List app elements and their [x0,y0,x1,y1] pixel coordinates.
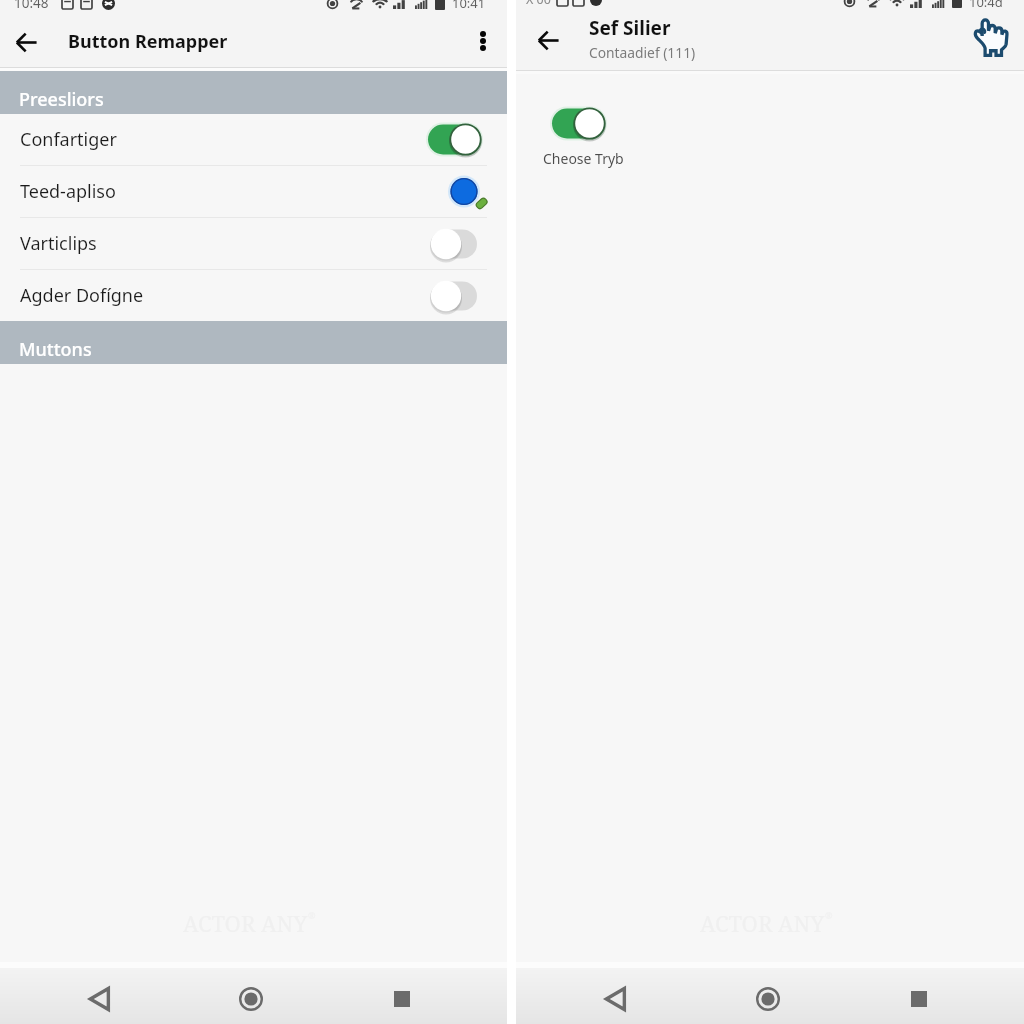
staticText: Sef Silier [589,15,671,41]
button[interactable]: More options [465,23,501,59]
button[interactable]: Back [596,979,636,1019]
staticText: 10:48 [14,0,49,12]
button[interactable]: Varticlips [0,218,507,269]
staticText: 10:4d [969,0,1003,10]
button[interactable]: Teed-apliso [0,166,507,217]
staticText: X 00 [526,0,551,8]
button[interactable]: Recents [899,979,939,1019]
button[interactable]: Back [529,21,567,59]
staticText: Button Remapper [68,29,228,54]
staticText: Preesliors [19,87,104,112]
button[interactable]: Confartiger [0,114,507,165]
staticText: Confartiger [20,127,117,152]
staticText: Muttons [19,337,92,362]
button[interactable]: Recents [382,979,422,1019]
button[interactable]: Cheose Tryb toggle [552,107,605,140]
staticText: Teed-apliso [20,179,116,204]
staticText: 10:41 [452,0,486,12]
staticText: Contaadief (111) [589,43,696,62]
button[interactable]: Back [80,979,120,1019]
button[interactable]: Gesture [964,12,1010,58]
staticText: Agder Dofígne [20,283,144,308]
button[interactable]: Agder Dofígne [0,270,507,321]
staticText: Varticlips [20,231,97,256]
staticText: Cheose Tryb [543,149,624,168]
button[interactable]: Home [748,979,788,1019]
button[interactable]: Home [231,979,271,1019]
button[interactable]: Back [7,23,45,61]
